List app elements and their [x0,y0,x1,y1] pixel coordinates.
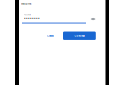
staticText: Continue [74,34,84,37]
staticText: Welcome [21,2,31,5]
staticText: •••••••• [24,16,40,22]
button[interactable]: Continue [63,32,96,40]
staticText: Cancel [47,34,54,37]
button[interactable]: Cancel [45,32,56,39]
button[interactable]: Show password [90,16,97,21]
staticText: Password [24,14,31,15]
